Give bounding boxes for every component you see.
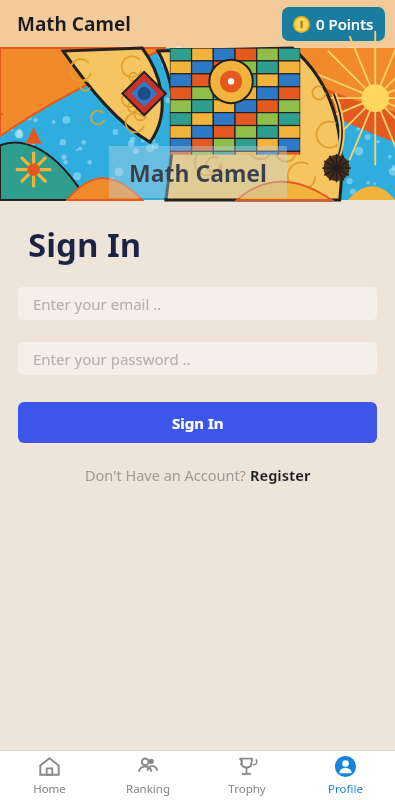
staticText: Register [250,465,311,485]
button[interactable]: Trophy [197,751,296,800]
button[interactable]: Enter your password .. [18,342,377,375]
button[interactable]: Ranking [98,751,197,800]
button[interactable]: Enter your email .. [18,287,377,320]
staticText: Enter your password .. [33,349,191,369]
staticText: Sign In [172,413,224,433]
staticText: Trophy [228,781,266,797]
button[interactable]: Profile [296,751,395,800]
button[interactable]: Sign In [18,402,377,443]
staticText: Math Camel [129,157,267,188]
staticText: Profile [328,781,363,797]
button[interactable]: Home [0,751,98,800]
staticText: 0 Points [316,14,374,34]
staticText: Enter your email .. [33,294,162,314]
staticText: Sign In [28,222,142,267]
staticText: Don't Have an Account? [85,465,250,485]
staticText: Math Camel [17,11,131,37]
staticText: Ranking [126,781,170,797]
button[interactable]: Register [250,465,311,485]
staticText: Home [33,781,66,797]
button[interactable]: 0 Points [282,7,385,41]
